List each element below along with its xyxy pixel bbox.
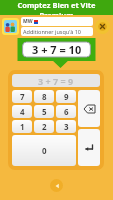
- staticText: 9: [64, 91, 69, 102]
- staticText: 3: [64, 121, 69, 132]
- staticText: 0: [42, 145, 47, 156]
- staticText: 3 + 7 = 9: [38, 75, 74, 87]
- staticText: 1: [20, 121, 25, 132]
- button[interactable]: MW: [21, 17, 93, 26]
- staticText: 8: [42, 91, 47, 102]
- button[interactable]: Profil: [2, 18, 19, 35]
- button[interactable]: 5: [34, 105, 54, 118]
- button[interactable]: 1: [12, 120, 32, 133]
- button[interactable]: Retour: [50, 179, 63, 192]
- button[interactable]: 7: [12, 90, 32, 103]
- staticText: 4: [20, 106, 25, 117]
- staticText: Comptez Bien et Vite Premium: [0, 0, 113, 15]
- staticText: MW: [23, 18, 33, 25]
- button[interactable]: 4: [12, 105, 32, 118]
- staticText: Additionner jusqu'à 10: [23, 28, 81, 35]
- button[interactable]: 6: [56, 105, 76, 118]
- button[interactable]: Effacer: [78, 90, 100, 127]
- button[interactable]: Valider: [78, 129, 100, 166]
- staticText: 3 + 7 = 10: [32, 42, 82, 57]
- button[interactable]: 3: [56, 120, 76, 133]
- button[interactable]: 2: [34, 120, 54, 133]
- button[interactable]: Additionner jusqu'à 10: [21, 27, 93, 36]
- button[interactable]: Fermer: [95, 19, 110, 34]
- button[interactable]: 9: [56, 90, 76, 103]
- button[interactable]: 8: [34, 90, 54, 103]
- staticText: 2: [42, 121, 47, 132]
- staticText: 6: [64, 106, 69, 117]
- staticText: 7: [20, 91, 25, 102]
- staticText: 5: [42, 106, 47, 117]
- button[interactable]: 0: [12, 135, 76, 166]
